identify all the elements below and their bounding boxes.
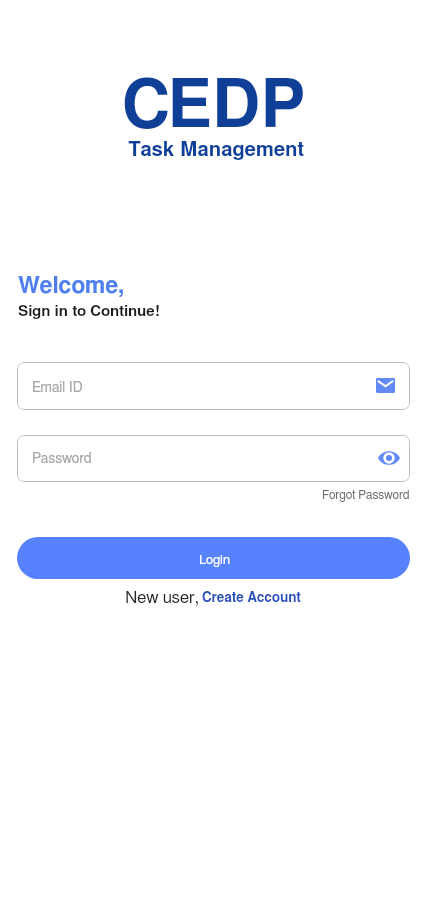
button[interactable]: Create Account [202, 591, 301, 605]
staticText: Task Management [128, 140, 305, 160]
button[interactable]: Forgot Password [322, 489, 410, 501]
button[interactable]: Login [17, 537, 410, 579]
button[interactable]: Show password [371, 440, 407, 476]
staticText: CEDP [122, 73, 306, 140]
staticText: Sign in to Continue! [18, 304, 160, 319]
staticText: Forgot Password [322, 489, 410, 501]
staticText: Email ID [32, 381, 83, 395]
button[interactable]: Email ID [17, 362, 410, 410]
staticText: Welcome, [18, 275, 125, 298]
button[interactable]: Password [17, 435, 410, 482]
staticText: Login [199, 554, 230, 567]
staticText: Create Account [202, 591, 301, 605]
staticText: New user, [125, 589, 200, 606]
button[interactable]: Email [367, 367, 403, 403]
staticText: Password [32, 452, 92, 466]
